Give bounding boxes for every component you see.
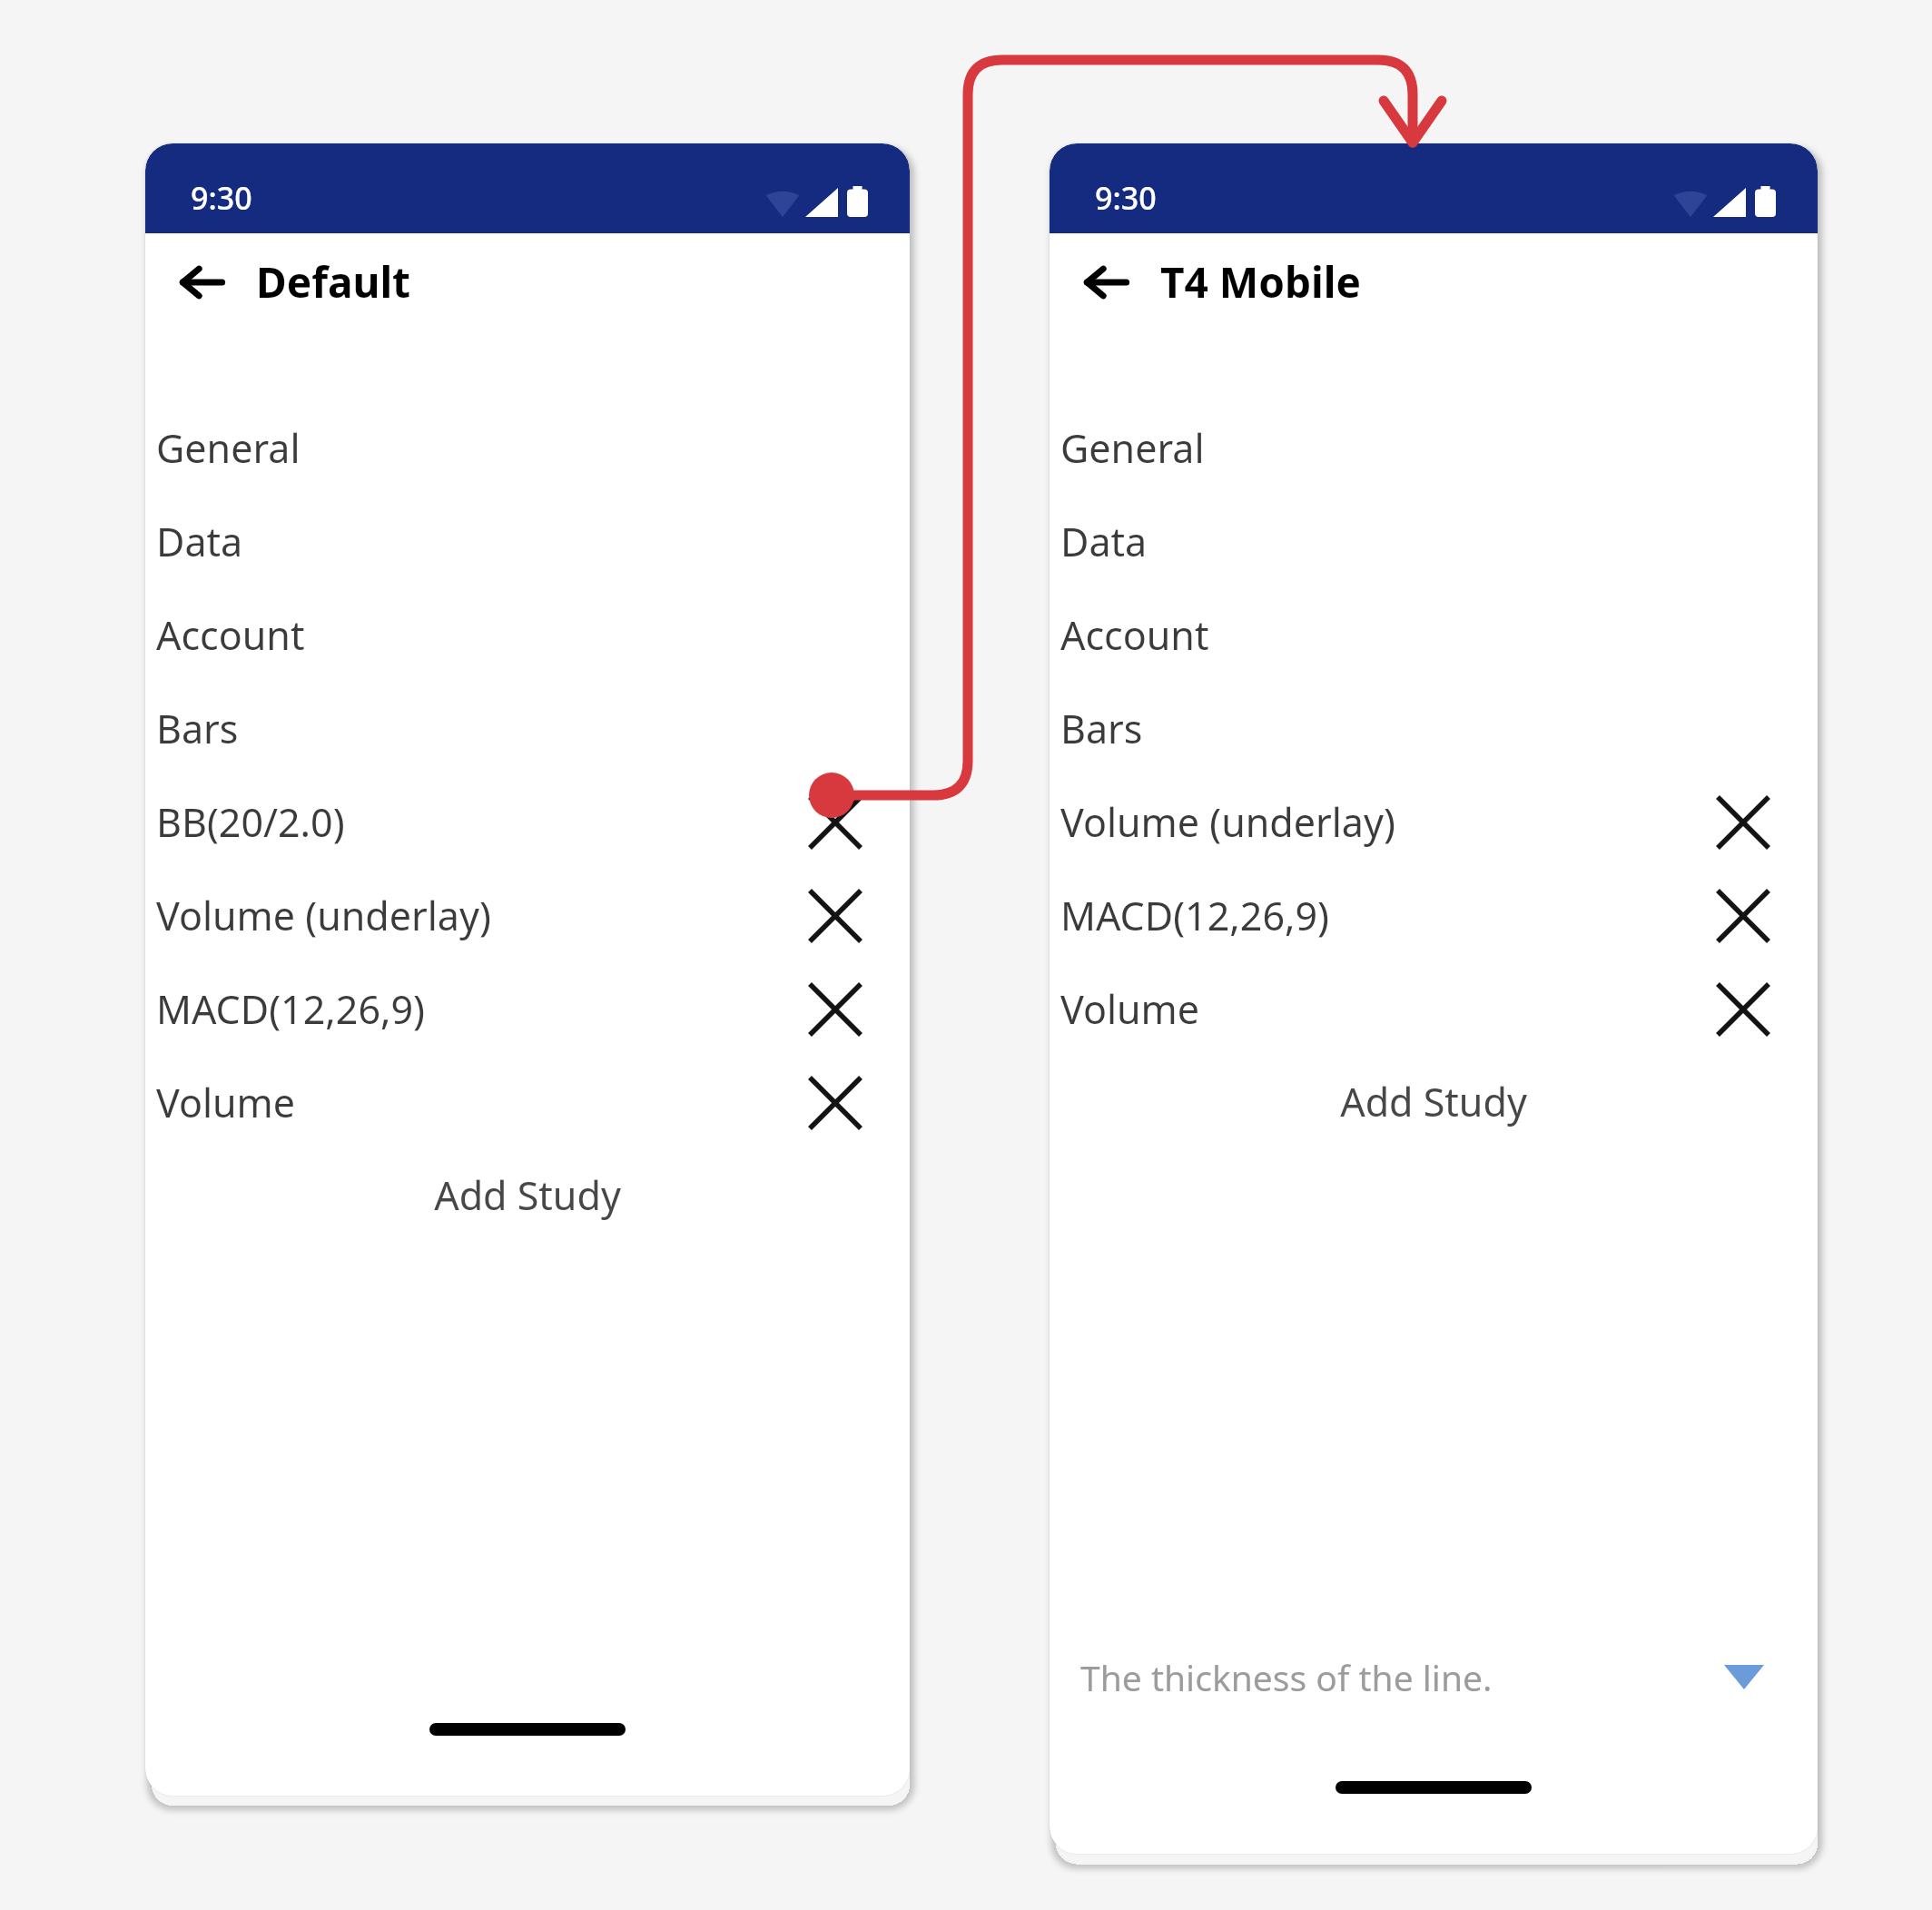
button[interactable]: Volume (underlay): [145, 869, 910, 962]
button[interactable]: Expand: [1716, 1649, 1772, 1705]
button[interactable]: Account: [145, 588, 910, 682]
button[interactable]: The thickness of the line.: [1050, 1638, 1818, 1716]
button[interactable]: Data: [145, 495, 910, 588]
staticText: Volume (underlay): [1060, 795, 1395, 849]
staticText: 9:30: [1095, 177, 1157, 219]
staticText: Account: [156, 608, 305, 662]
button[interactable]: Bars: [145, 682, 910, 775]
staticText: Volume: [156, 1076, 296, 1129]
button[interactable]: Remove Volume (underlay): [1707, 786, 1779, 859]
button[interactable]: Remove Volume: [1707, 973, 1779, 1046]
button[interactable]: Bars: [1050, 682, 1818, 775]
staticText: Data: [156, 515, 243, 568]
button[interactable]: Add Study: [145, 1149, 910, 1240]
button[interactable]: Volume: [1050, 962, 1818, 1056]
staticText: General: [156, 421, 301, 475]
button[interactable]: Remove Volume: [799, 1067, 872, 1139]
staticText: Add Study: [434, 1168, 621, 1222]
button[interactable]: Volume (underlay): [1050, 775, 1818, 869]
button[interactable]: MACD(12,26,9): [145, 962, 910, 1056]
button[interactable]: Remove MACD(12,26,9): [799, 973, 872, 1046]
button[interactable]: BB(20/2.0): [145, 775, 910, 869]
staticText: Bars: [1060, 702, 1143, 755]
staticText: MACD(12,26,9): [1060, 889, 1330, 942]
button[interactable]: General: [1050, 401, 1818, 495]
staticText: MACD(12,26,9): [156, 982, 426, 1036]
button[interactable]: Account: [1050, 588, 1818, 682]
staticText: Account: [1060, 608, 1209, 662]
staticText: Add Study: [1340, 1075, 1527, 1128]
button[interactable]: Back: [1069, 245, 1144, 320]
staticText: T4 Mobile: [1160, 253, 1361, 310]
staticText: 9:30: [191, 177, 252, 219]
staticText: The thickness of the line.: [1080, 1653, 1493, 1701]
button[interactable]: MACD(12,26,9): [1050, 869, 1818, 962]
button[interactable]: Remove Volume (underlay): [799, 880, 872, 952]
staticText: General: [1060, 421, 1205, 475]
staticText: Data: [1060, 515, 1148, 568]
staticText: BB(20/2.0): [156, 795, 345, 849]
button[interactable]: Data: [1050, 495, 1818, 588]
button[interactable]: Volume: [145, 1056, 910, 1149]
button[interactable]: Back: [165, 245, 240, 320]
button[interactable]: Add Study: [1050, 1056, 1818, 1147]
button[interactable]: Remove MACD(12,26,9): [1707, 880, 1779, 952]
staticText: Bars: [156, 702, 239, 755]
staticText: Volume: [1060, 982, 1200, 1036]
button[interactable]: General: [145, 401, 910, 495]
staticText: Volume (underlay): [156, 889, 491, 942]
button[interactable]: Remove BB(20/2.0): [799, 786, 872, 859]
staticText: Default: [256, 253, 411, 310]
